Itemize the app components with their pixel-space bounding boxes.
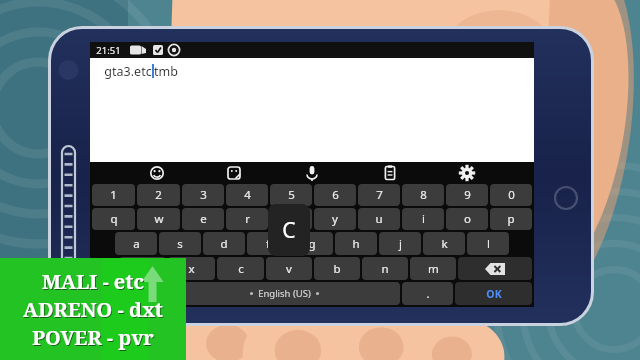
button[interactable]: 9 bbox=[446, 184, 488, 206]
staticText: y bbox=[332, 211, 338, 227]
button[interactable]: 4 bbox=[226, 184, 268, 206]
staticText: g bbox=[308, 236, 316, 252]
button[interactable]: h bbox=[335, 232, 377, 255]
staticText: ADRENO - dxt bbox=[23, 296, 163, 323]
staticText: w bbox=[154, 211, 164, 227]
staticText: POVER - pvr bbox=[32, 324, 154, 351]
staticText: 0 bbox=[508, 187, 515, 203]
button[interactable]: 2 bbox=[137, 184, 180, 206]
button[interactable]: o bbox=[446, 208, 488, 230]
button[interactable]: 0 bbox=[490, 184, 532, 206]
button[interactable]: 1 bbox=[92, 184, 135, 206]
staticText: b bbox=[333, 261, 341, 277]
staticText: , bbox=[140, 286, 144, 302]
button[interactable]: Clipboard bbox=[379, 162, 401, 184]
button[interactable]: 7 bbox=[358, 184, 400, 206]
staticText: MALI - etc bbox=[43, 269, 145, 296]
staticText: q bbox=[110, 211, 118, 227]
button[interactable]: e bbox=[182, 208, 224, 230]
button[interactable]: 3 bbox=[182, 184, 224, 206]
button[interactable]: u bbox=[358, 208, 400, 230]
staticText: . bbox=[426, 286, 430, 302]
staticText: l bbox=[487, 236, 490, 252]
staticText: s bbox=[177, 236, 183, 252]
button[interactable]: y bbox=[314, 208, 356, 230]
button[interactable]: 6 bbox=[314, 184, 356, 206]
staticText: POVER - pvr bbox=[33, 325, 155, 352]
button[interactable]: k bbox=[423, 232, 465, 255]
staticText: p bbox=[507, 211, 515, 227]
button[interactable]: OK bbox=[455, 282, 532, 305]
staticText: 21:51 bbox=[96, 44, 121, 57]
staticText: 8 bbox=[420, 187, 427, 203]
staticText: 7 bbox=[376, 187, 383, 203]
button[interactable]: 5 bbox=[270, 184, 312, 206]
button[interactable]: Keyboard settings bbox=[456, 162, 478, 184]
button[interactable]: English (US) bbox=[169, 282, 400, 305]
button[interactable]: w bbox=[137, 208, 180, 230]
staticText: 6 bbox=[332, 187, 339, 203]
button[interactable]: gta3.etc bbox=[90, 58, 534, 84]
staticText: t bbox=[289, 211, 294, 227]
button[interactable]: . bbox=[402, 282, 453, 305]
button[interactable]: Emoji bbox=[146, 162, 168, 184]
staticText: c bbox=[238, 261, 244, 277]
staticText: d bbox=[220, 236, 228, 252]
staticText: f bbox=[266, 236, 270, 252]
staticText: English (US) bbox=[258, 287, 311, 300]
button[interactable]: t bbox=[270, 208, 312, 230]
button[interactable]: 8 bbox=[402, 184, 444, 206]
staticText: u bbox=[375, 211, 383, 227]
staticText: x bbox=[188, 261, 195, 277]
button[interactable]: x bbox=[168, 257, 215, 280]
button[interactable]: j bbox=[379, 232, 421, 255]
button[interactable]: b bbox=[314, 257, 360, 280]
button[interactable]: Backspace bbox=[458, 257, 532, 280]
button[interactable]: g bbox=[291, 232, 333, 255]
staticText: 5 bbox=[288, 187, 295, 203]
staticText: OK bbox=[486, 287, 502, 301]
staticText: m bbox=[428, 261, 439, 277]
staticText: 4 bbox=[244, 187, 251, 203]
staticText: 3 bbox=[200, 187, 207, 203]
button[interactable]: r bbox=[226, 208, 268, 230]
button[interactable]: s bbox=[159, 232, 201, 255]
staticText: n bbox=[381, 261, 389, 277]
button[interactable]: i bbox=[402, 208, 444, 230]
staticText: 9 bbox=[464, 187, 471, 203]
button[interactable]: , bbox=[116, 282, 167, 305]
staticText: j bbox=[399, 236, 402, 252]
button[interactable]: f bbox=[247, 232, 289, 255]
button[interactable]: n bbox=[362, 257, 408, 280]
button[interactable]: MALI - etc bbox=[0, 258, 186, 360]
button[interactable]: z bbox=[119, 257, 166, 280]
staticText: 1 bbox=[110, 187, 117, 203]
staticText: tmb bbox=[154, 63, 178, 80]
button[interactable]: d bbox=[203, 232, 245, 255]
button[interactable]: q bbox=[92, 208, 135, 230]
staticText: 2 bbox=[155, 187, 162, 203]
staticText: i bbox=[422, 211, 425, 227]
staticText: v bbox=[286, 261, 292, 277]
button[interactable]: p bbox=[490, 208, 532, 230]
staticText: e bbox=[200, 211, 207, 227]
staticText: gta3.etc bbox=[104, 63, 152, 80]
staticText: r bbox=[245, 211, 250, 227]
staticText: C bbox=[282, 216, 296, 245]
button[interactable]: v bbox=[266, 257, 312, 280]
button[interactable]: Stickers bbox=[223, 162, 245, 184]
staticText: MALI - etc bbox=[42, 268, 144, 295]
staticText: ADRENO - dxt bbox=[24, 297, 164, 324]
staticText: z bbox=[140, 261, 146, 277]
staticText: k bbox=[441, 236, 448, 252]
button[interactable]: l bbox=[467, 232, 509, 255]
button[interactable]: m bbox=[410, 257, 456, 280]
button[interactable]: a bbox=[115, 232, 157, 255]
button[interactable]: Voice input bbox=[301, 162, 323, 184]
button[interactable]: c bbox=[217, 257, 264, 280]
staticText: a bbox=[133, 236, 140, 252]
staticText: h bbox=[352, 236, 360, 252]
staticText: o bbox=[464, 211, 471, 227]
